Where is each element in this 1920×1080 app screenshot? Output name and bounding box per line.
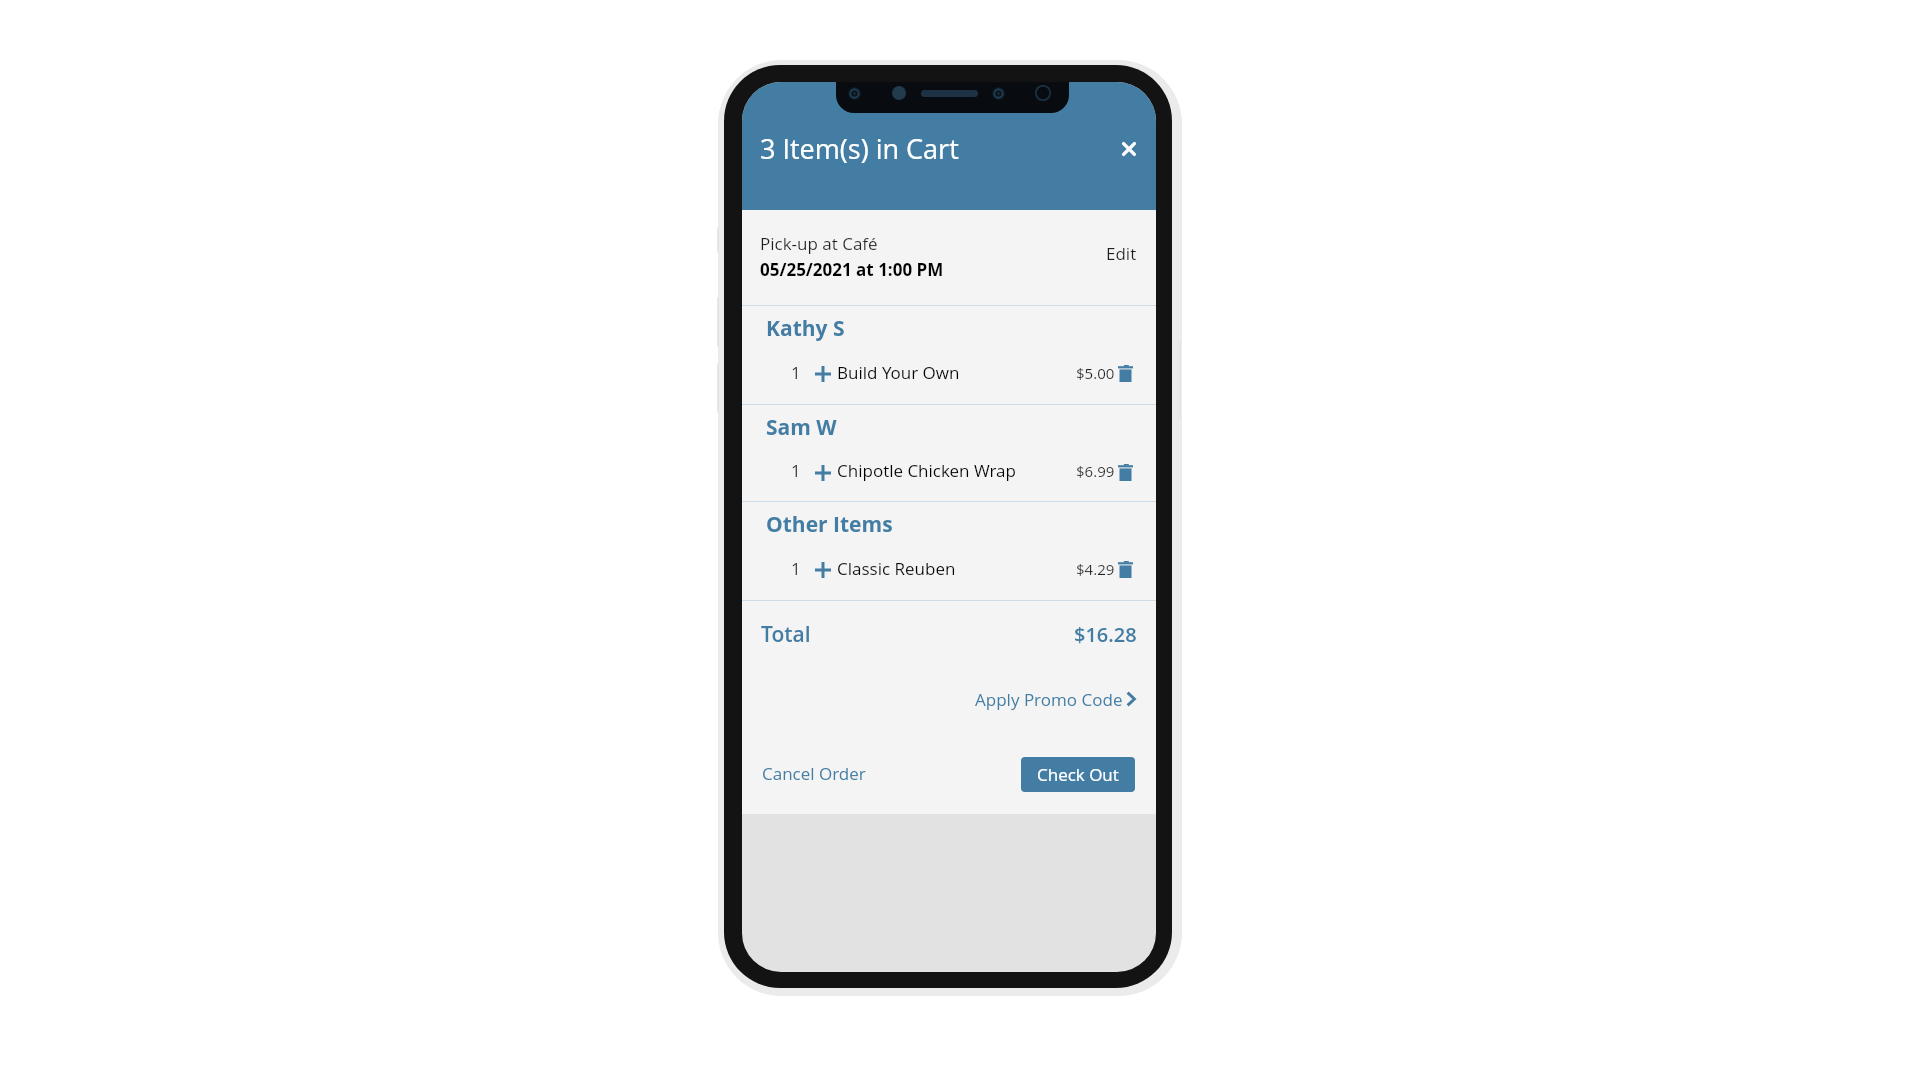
staticText: 3 Item(s) in Cart	[760, 130, 959, 167]
staticText: $16.28	[1074, 621, 1137, 648]
button[interactable]: Cancel Order	[756, 756, 872, 790]
button[interactable]: Remove item	[1118, 464, 1133, 481]
staticText: Other Items	[766, 510, 893, 539]
staticText: Check Out	[1037, 763, 1119, 786]
staticText: 1	[791, 361, 801, 384]
button[interactable]: Check Out	[1021, 757, 1135, 792]
staticText: Sam W	[766, 413, 837, 442]
staticText: Pick-up at Café	[760, 232, 878, 255]
staticText: Build Your Own	[837, 361, 960, 384]
staticText: Apply Promo Code	[975, 688, 1123, 711]
button[interactable]: Remove item	[1118, 561, 1133, 578]
button[interactable]	[742, 457, 1156, 489]
staticText: Cancel Order	[762, 762, 866, 785]
staticText: $5.00	[1076, 363, 1115, 383]
button[interactable]: Apply Promo Code	[964, 682, 1136, 716]
button[interactable]: Remove item	[1118, 365, 1133, 382]
button[interactable]	[742, 554, 1156, 586]
button[interactable]	[742, 210, 1156, 305]
staticText: Total	[761, 620, 811, 649]
staticText: 1	[791, 459, 801, 482]
staticText: Classic Reuben	[837, 557, 956, 580]
staticText: Edit	[1106, 242, 1137, 265]
staticText: Kathy S	[766, 314, 845, 343]
staticText: $4.29	[1076, 559, 1115, 579]
button[interactable]: Close	[1111, 131, 1147, 167]
staticText: 1	[791, 557, 801, 580]
button[interactable]	[742, 358, 1156, 390]
staticText: $6.99	[1076, 461, 1115, 481]
staticText: 05/25/2021 at 1:00 PM	[760, 258, 944, 281]
button[interactable]: Edit	[1097, 236, 1145, 270]
staticText: Chipotle Chicken Wrap	[837, 459, 1016, 482]
